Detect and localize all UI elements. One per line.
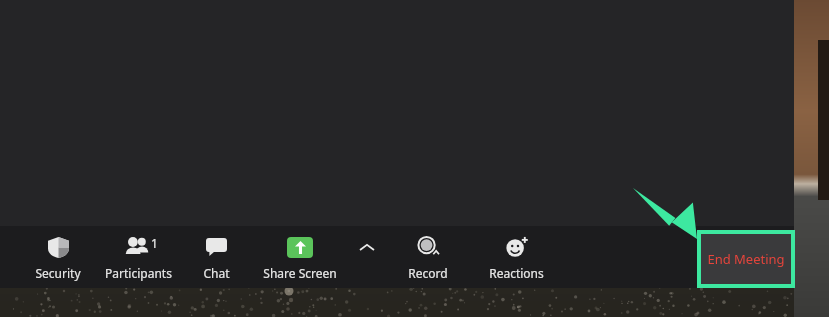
- staticText: Security: [35, 265, 81, 281]
- staticText: Chat: [203, 265, 230, 281]
- button[interactable]: Record: [384, 226, 472, 288]
- staticText: End Meeting: [707, 250, 785, 268]
- button[interactable]: Share screen options: [350, 226, 384, 288]
- staticText: Reactions: [489, 265, 544, 281]
- button[interactable]: Security: [22, 226, 94, 288]
- button[interactable]: Share Screen: [250, 226, 350, 288]
- staticText: Participants: [105, 265, 172, 281]
- staticText: Record: [408, 265, 448, 281]
- staticText: Share Screen: [263, 265, 337, 281]
- button[interactable]: Reactions: [472, 226, 560, 288]
- button[interactable]: 1: [94, 226, 182, 288]
- other: Annotation arrow: [0, 0, 829, 317]
- button[interactable]: End Meeting: [701, 234, 791, 284]
- button[interactable]: Chat: [182, 226, 250, 288]
